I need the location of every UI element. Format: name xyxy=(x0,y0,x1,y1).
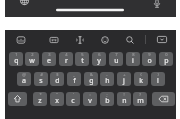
button[interactable]: - xyxy=(100,72,114,86)
button[interactable]: 3 xyxy=(42,52,56,66)
button[interactable]: & xyxy=(84,72,98,86)
staticText: r xyxy=(65,56,68,66)
button[interactable]: Voice input xyxy=(150,0,164,10)
button[interactable]: Emoji xyxy=(98,33,112,47)
button[interactable]: 1 xyxy=(9,52,23,66)
staticText: : xyxy=(89,92,91,97)
button[interactable]: Text editing xyxy=(73,33,87,47)
button[interactable]: ) xyxy=(151,72,165,86)
staticText: 6 xyxy=(98,52,101,57)
button[interactable]: 9 xyxy=(142,52,156,66)
staticText: ; xyxy=(106,92,108,97)
staticText: o xyxy=(147,56,152,66)
staticText: g xyxy=(89,76,94,86)
button[interactable]: @ xyxy=(17,72,31,86)
button[interactable]: 0 xyxy=(159,52,173,66)
button[interactable]: Collapse keyboard xyxy=(157,36,167,43)
button[interactable]: 4 xyxy=(59,52,73,66)
staticText: 5 xyxy=(81,52,84,57)
staticText: c xyxy=(71,96,75,106)
staticText: n xyxy=(122,96,127,106)
staticText: 0 xyxy=(165,52,168,57)
button[interactable]: # xyxy=(34,72,48,86)
staticText: p xyxy=(164,56,169,66)
button[interactable]: Search xyxy=(123,33,137,47)
button[interactable]: _ xyxy=(67,72,81,86)
button[interactable]: ; xyxy=(100,92,114,106)
staticText: ( xyxy=(140,72,142,77)
staticText: s xyxy=(39,76,43,86)
button[interactable]: ( xyxy=(134,72,148,86)
button[interactable]: $ xyxy=(50,72,64,86)
staticText: t xyxy=(81,56,84,66)
button[interactable]: 2 xyxy=(25,52,39,66)
staticText: + xyxy=(123,72,126,77)
staticText: i xyxy=(132,56,134,66)
staticText: _ xyxy=(73,72,75,77)
staticText: ! xyxy=(123,92,125,97)
button[interactable]: ' xyxy=(66,92,80,106)
staticText: u xyxy=(114,56,119,66)
staticText: h xyxy=(105,76,110,86)
staticText: 8 xyxy=(132,52,135,57)
staticText: ) xyxy=(157,72,159,77)
staticText: z xyxy=(38,96,42,106)
staticText: q xyxy=(14,56,19,66)
button[interactable]: + xyxy=(117,72,131,86)
button[interactable]: ! xyxy=(117,92,131,106)
staticText: $ xyxy=(56,72,59,77)
staticText: 2 xyxy=(31,52,34,57)
button[interactable]: Stickers xyxy=(14,33,28,47)
button[interactable]: * xyxy=(33,92,47,106)
staticText: k xyxy=(139,76,143,86)
staticText: l xyxy=(157,76,159,86)
button[interactable]: : xyxy=(83,92,97,106)
staticText: ? xyxy=(139,92,141,97)
staticText: w xyxy=(29,56,35,66)
staticText: 1 xyxy=(15,52,18,57)
button[interactable]: Backspace xyxy=(152,92,175,106)
staticText: m xyxy=(137,96,144,106)
staticText: x xyxy=(55,96,59,106)
staticText: & xyxy=(90,72,93,77)
staticText: " xyxy=(56,92,58,97)
button[interactable]: GIF xyxy=(47,33,61,47)
button[interactable]: ? xyxy=(133,92,147,106)
staticText: e xyxy=(47,56,51,66)
button[interactable]: Switch language xyxy=(17,0,32,8)
staticText: y xyxy=(97,56,101,66)
button[interactable]: Shift xyxy=(8,92,27,106)
staticText: j xyxy=(123,76,125,86)
staticText: - xyxy=(106,72,108,77)
staticText: * xyxy=(39,92,42,97)
staticText: d xyxy=(55,76,60,86)
staticText: # xyxy=(40,72,43,77)
staticText: 4 xyxy=(65,52,68,57)
staticText: f xyxy=(73,76,76,86)
button[interactable]: 8 xyxy=(126,52,140,66)
button[interactable]: 5 xyxy=(75,52,89,66)
staticText: a xyxy=(22,76,26,86)
staticText: 7 xyxy=(115,52,118,57)
button[interactable]: 7 xyxy=(109,52,123,66)
staticText: 9 xyxy=(148,52,151,57)
staticText: b xyxy=(105,96,110,106)
staticText: @ xyxy=(22,72,26,77)
button[interactable]: 6 xyxy=(92,52,106,66)
staticText: 3 xyxy=(48,52,51,57)
button[interactable]: " xyxy=(50,92,64,106)
staticText: ' xyxy=(73,92,74,97)
staticText: v xyxy=(88,96,92,106)
